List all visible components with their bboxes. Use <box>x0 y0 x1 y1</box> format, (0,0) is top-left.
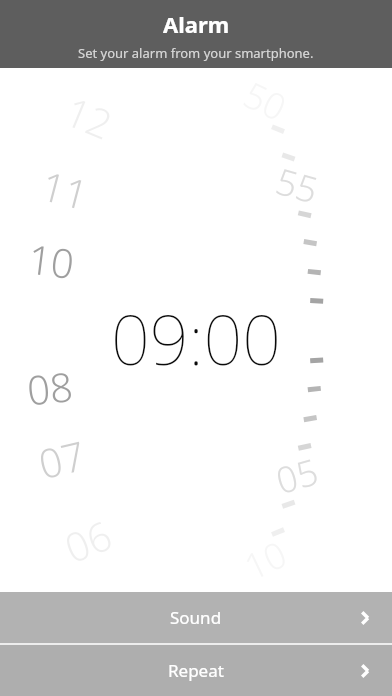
other: Sound <box>355 608 375 628</box>
staticText: Sound <box>170 606 222 629</box>
staticText: Repeat <box>168 659 224 682</box>
button[interactable]: Repeat <box>0 645 392 696</box>
other: Repeat <box>355 661 375 681</box>
button[interactable]: Sound <box>0 592 392 643</box>
staticText: 09:00 <box>111 292 282 385</box>
staticText: Alarm <box>163 9 230 39</box>
staticText: Set your alarm from your smartphone. <box>78 44 314 62</box>
